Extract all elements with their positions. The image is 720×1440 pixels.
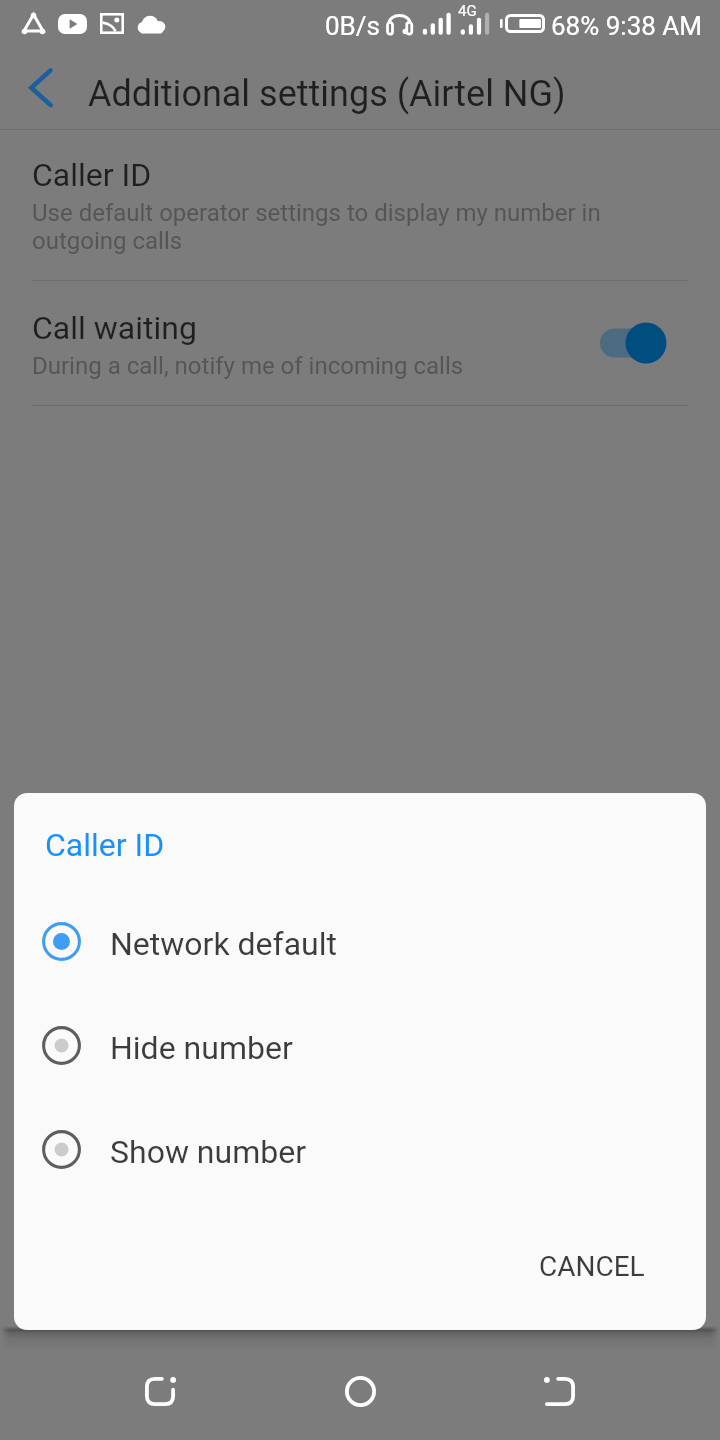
staticText: 68% 9:38 AM xyxy=(551,11,702,41)
staticText: Call waiting xyxy=(32,309,197,347)
button[interactable]: Network default xyxy=(14,889,706,993)
staticText: Caller ID xyxy=(45,826,165,864)
staticText: Caller ID xyxy=(32,156,152,194)
button[interactable]: Call waiting xyxy=(0,281,720,405)
button[interactable]: Hide number xyxy=(14,993,706,1097)
button[interactable]: CANCEL xyxy=(525,1236,659,1297)
button[interactable]: Show number xyxy=(14,1097,706,1201)
staticText: 4G xyxy=(458,2,477,20)
button[interactable]: Home xyxy=(310,1330,410,1440)
staticText: Show number xyxy=(110,1133,307,1171)
staticText: During a call, notify me of incoming cal… xyxy=(32,352,464,380)
staticText: Network default xyxy=(110,925,337,963)
staticText: 0B/s xyxy=(325,11,380,41)
staticText: CANCEL xyxy=(539,1250,645,1283)
button[interactable]: Navigate up xyxy=(5,55,77,130)
button[interactable]: Recent apps xyxy=(110,1330,210,1440)
button[interactable]: Back xyxy=(510,1330,610,1440)
staticText: Hide number xyxy=(110,1029,293,1067)
staticText: Additional settings (Airtel NG) xyxy=(88,73,566,115)
staticText: Use default operator settings to display… xyxy=(32,199,630,255)
button[interactable]: Caller ID xyxy=(0,128,720,280)
